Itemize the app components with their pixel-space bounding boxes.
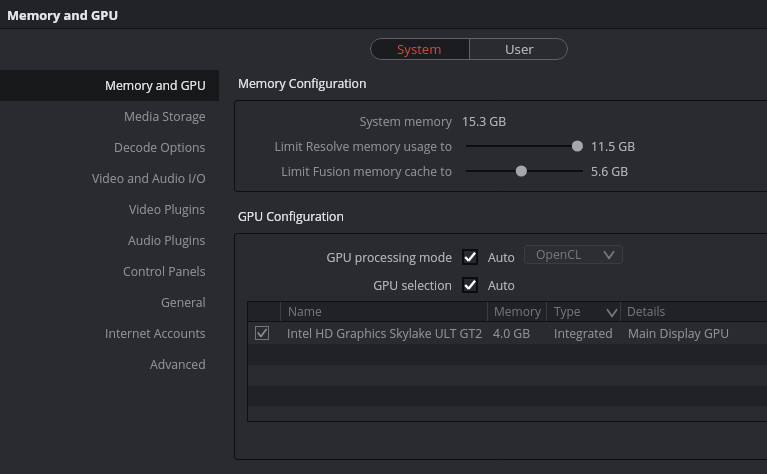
button[interactable]: General [0,287,219,318]
staticText: GPU processing mode [238,249,452,266]
staticText: Memory and GPU [105,77,206,94]
button[interactable]: User [470,38,568,60]
staticText: 5.6 GB [591,163,629,180]
staticText: Memory Configuration [238,75,367,92]
staticText: 11.5 GB [591,138,636,155]
button[interactable]: Decode Options [0,132,219,163]
staticText: Internet Accounts [105,325,206,342]
button[interactable]: Media Storage [0,101,219,132]
staticText: Main Display GPU [628,325,730,342]
staticText: Integrated [554,325,613,342]
staticText: Memory [494,303,541,319]
staticText: 15.3 GB [462,113,507,130]
staticText: General [161,294,206,311]
staticText: Video and Audio I/O [92,170,206,187]
button[interactable]: Intel HD Graphics Skylake ULT GT2 [247,322,767,344]
button[interactable]: GPU selection Auto [464,279,476,291]
button[interactable]: Audio Plugins [0,225,219,256]
staticText: Media Storage [124,108,206,125]
staticText: GPU selection [238,277,452,294]
staticText: Intel HD Graphics Skylake ULT GT2 [287,325,483,342]
button[interactable]: GPU processing mode Auto [464,251,476,263]
staticText: Limit Fusion memory cache to [238,163,452,180]
staticText: Auto [488,277,515,294]
button[interactable]: Video Plugins [0,194,219,225]
staticText: Auto [488,249,515,266]
staticText: System [397,40,442,58]
staticText: Details [627,303,666,319]
staticText: Advanced [150,356,206,373]
staticText: Control Panels [123,263,206,280]
staticText: Video Plugins [129,201,206,218]
button[interactable]: OpenCL [524,245,623,264]
button[interactable]: Control Panels [0,256,219,287]
button[interactable]: Internet Accounts [0,318,219,349]
staticText: Type [554,303,581,319]
staticText: System memory [238,113,452,130]
button[interactable]: Advanced [0,349,219,380]
button[interactable]: System [370,38,469,60]
button[interactable]: Memory and GPU [0,70,219,101]
staticText: Decode Options [114,139,206,156]
button[interactable]: Video and Audio I/O [0,163,219,194]
staticText: 4.0 GB [493,325,531,342]
staticText: User [505,40,534,58]
staticText: OpenCL [536,246,582,263]
staticText: Audio Plugins [128,232,206,249]
staticText: GPU Configuration [238,208,344,225]
staticText: Memory and GPU [7,6,119,23]
staticText: Limit Resolve memory usage to [238,138,452,155]
staticText: Name [288,303,322,319]
